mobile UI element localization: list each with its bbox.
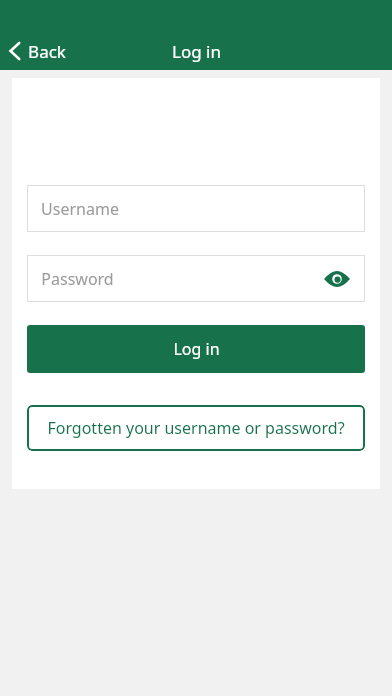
staticText: Log in [172,40,221,63]
staticText: Forgotten your username or password? [47,417,345,439]
button[interactable]: Username [27,185,365,232]
button[interactable]: Show password [319,261,355,297]
button[interactable]: Log in [27,325,365,373]
staticText: Back [28,40,66,63]
button[interactable]: Password [27,255,365,302]
button[interactable]: Forgotten your username or password? [27,405,365,451]
button[interactable]: Back [0,32,76,70]
staticText: Password [41,268,114,290]
staticText: Log in [173,338,220,360]
staticText: Username [41,198,119,220]
